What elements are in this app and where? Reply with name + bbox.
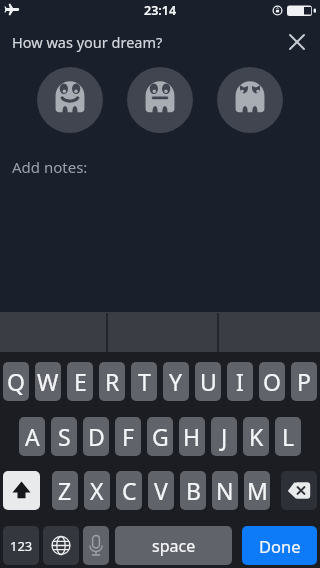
button[interactable] [43, 526, 79, 565]
button[interactable]: 123 [3, 526, 39, 565]
button[interactable] [127, 67, 193, 133]
staticText: R [105, 366, 120, 397]
staticText: Done [259, 535, 301, 557]
button[interactable]: D [83, 417, 109, 456]
staticText: Q [7, 366, 25, 397]
staticText: Z [58, 475, 72, 506]
button[interactable]: space [115, 526, 232, 565]
staticText: E [74, 366, 87, 397]
staticText: F [122, 421, 134, 452]
staticText: W [37, 366, 59, 397]
staticText: V [154, 475, 168, 506]
staticText: 23:14 [144, 2, 177, 19]
staticText: H [183, 421, 201, 452]
staticText: Y [169, 366, 183, 397]
button[interactable]: L [275, 417, 301, 456]
button[interactable]: S [51, 417, 77, 456]
button[interactable]: X [84, 471, 110, 510]
button[interactable]: J [211, 417, 237, 456]
button[interactable]: E [67, 362, 93, 401]
button[interactable]: Done [242, 526, 317, 565]
button[interactable]: V [148, 471, 174, 510]
button[interactable] [37, 67, 103, 133]
staticText: K [249, 421, 264, 452]
staticText: P [297, 366, 311, 397]
staticText: B [186, 475, 201, 506]
button[interactable] [217, 67, 283, 133]
staticText: J [221, 421, 228, 452]
button[interactable]: Z [52, 471, 78, 510]
button[interactable]: R [99, 362, 125, 401]
staticText: S [58, 421, 71, 452]
staticText: space [152, 535, 196, 557]
button[interactable]: O [259, 362, 285, 401]
staticText: U [200, 366, 217, 397]
button[interactable] [83, 526, 109, 565]
staticText: G [152, 421, 169, 452]
button[interactable]: F [115, 417, 141, 456]
button[interactable]: G [147, 417, 173, 456]
button[interactable]: A [19, 417, 45, 456]
button[interactable] [3, 471, 40, 510]
button[interactable] [285, 30, 309, 54]
staticText: Add notes: [12, 157, 88, 177]
button[interactable]: P [291, 362, 317, 401]
staticText: I [236, 366, 244, 397]
staticText: 123 [10, 537, 33, 555]
staticText: C [122, 475, 137, 506]
button[interactable]: I [227, 362, 253, 401]
staticText: X [90, 475, 104, 506]
button[interactable]: C [116, 471, 142, 510]
button[interactable]: N [212, 471, 238, 510]
button[interactable]: B [180, 471, 206, 510]
button[interactable]: K [243, 417, 269, 456]
button[interactable]: W [35, 362, 61, 401]
button[interactable]: Y [163, 362, 189, 401]
button[interactable]: T [131, 362, 157, 401]
staticText: M [247, 475, 268, 506]
staticText: N [216, 475, 234, 506]
staticText: A [25, 421, 40, 452]
staticText: How was your dream? [12, 32, 163, 52]
staticText: L [282, 421, 295, 452]
button[interactable] [281, 471, 317, 510]
staticText: O [263, 366, 281, 397]
button[interactable]: H [179, 417, 205, 456]
button[interactable]: Q [3, 362, 29, 401]
button[interactable]: M [244, 471, 270, 510]
staticText: D [88, 421, 105, 452]
button[interactable]: U [195, 362, 221, 401]
staticText: T [138, 366, 151, 397]
